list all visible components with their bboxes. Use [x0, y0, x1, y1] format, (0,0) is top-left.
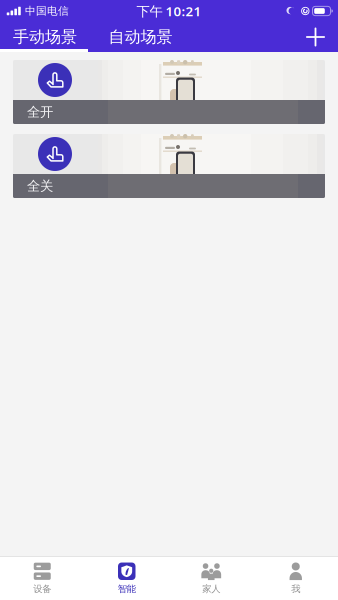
- button[interactable]: 全开: [13, 60, 325, 124]
- staticText: 我: [291, 583, 300, 595]
- staticText: 全关: [27, 178, 53, 194]
- button[interactable]: 全关: [13, 134, 325, 198]
- staticText: 家人: [202, 583, 220, 595]
- button[interactable]: 手动场景: [0, 22, 90, 52]
- button[interactable]: 家人: [169, 557, 253, 600]
- staticText: 中国电信: [25, 4, 69, 17]
- staticText: 设备: [33, 583, 51, 595]
- button[interactable]: Add scene: [298, 22, 333, 52]
- staticText: 自动场景: [108, 27, 172, 47]
- staticText: 全开: [27, 104, 53, 120]
- button[interactable]: 设备: [0, 557, 84, 600]
- staticText: 下午 10:21: [136, 2, 201, 20]
- staticText: 智能: [118, 583, 136, 595]
- button[interactable]: 自动场景: [90, 22, 191, 52]
- button[interactable]: 我: [253, 557, 338, 600]
- button[interactable]: 智能: [84, 557, 169, 600]
- staticText: 手动场景: [13, 27, 77, 47]
